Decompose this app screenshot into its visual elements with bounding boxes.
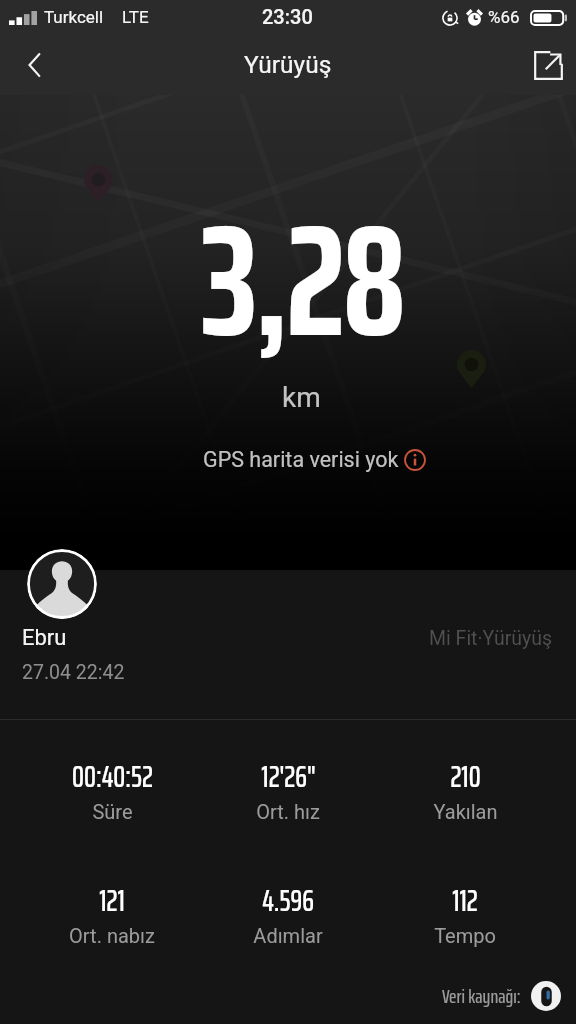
button[interactable]: 121 [22,877,202,947]
button[interactable]: 112 [375,877,555,947]
staticText: 00:40:52 [72,753,153,800]
button[interactable]: 210 [375,753,555,823]
staticText: 121 [99,877,125,924]
staticText: Yakılan [433,800,498,823]
staticText: 112 [452,877,478,924]
staticText: Ort. nabız [69,924,155,947]
staticText: GPS harita verisi yok [203,447,399,472]
button[interactable]: 4.596 [198,877,378,947]
staticText: 210 [450,753,481,800]
staticText: Veri kaynağı: [442,980,521,1011]
staticText: 3,28 [201,158,404,404]
staticText: %66 [488,7,520,27]
staticText: 4.596 [262,877,314,924]
button[interactable]: 00:40:52 [22,753,202,823]
button[interactable]: Profile photo [27,549,97,619]
staticText: Süre [92,800,133,823]
staticText: 12'26" [261,753,316,800]
button[interactable]: Data source: Mi Band [531,981,561,1011]
staticText: Adımlar [253,924,323,947]
staticText: Mi Fit·Yürüyüş [429,627,553,650]
staticText: Tempo [434,924,496,947]
button[interactable]: Back [9,40,61,92]
staticText: Ebru [22,625,67,651]
staticText: 23:30 [262,5,313,28]
button[interactable]: Info [403,448,427,472]
staticText: Yürüyüş [244,50,332,79]
staticText: Ort. hız [256,800,320,823]
staticText: LTE [122,7,149,27]
button[interactable]: 12'26" [198,753,378,823]
staticText: Turkcell [44,7,104,27]
button[interactable]: Share [521,39,575,93]
staticText: km [282,381,321,414]
staticText: 27.04 22:42 [22,661,125,684]
